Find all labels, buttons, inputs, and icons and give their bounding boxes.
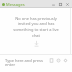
staticText: Messages bbox=[6, 2, 25, 7]
button[interactable]: Attach file bbox=[49, 58, 54, 63]
button[interactable]: Minimize bbox=[51, 2, 56, 7]
staticText: No one has previously invited you and ha… bbox=[12, 16, 60, 38]
button[interactable]: Settings bbox=[63, 58, 68, 63]
staticText: Type here and press enter bbox=[5, 58, 47, 67]
button[interactable]: Maximize bbox=[58, 2, 63, 7]
button[interactable]: Emoji bbox=[56, 58, 61, 63]
button[interactable]: Type here and press enter bbox=[5, 58, 47, 67]
button[interactable]: Close bbox=[65, 2, 70, 7]
button[interactable]: Download bbox=[33, 40, 40, 47]
